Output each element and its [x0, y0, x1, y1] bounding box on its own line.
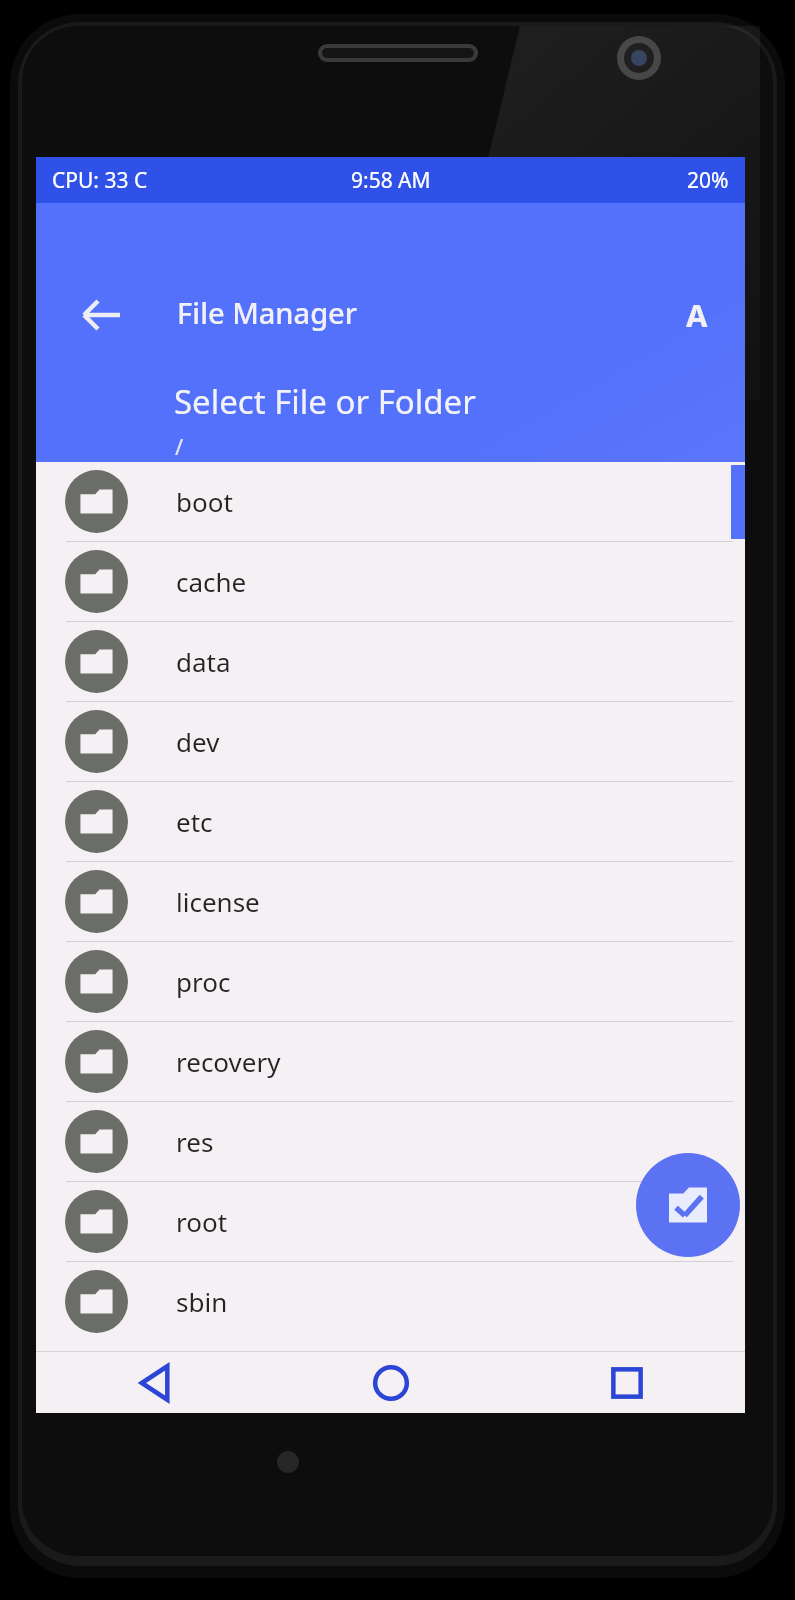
button[interactable]: root	[36, 1182, 745, 1261]
staticText: cache	[176, 564, 247, 599]
button[interactable]: sbin	[36, 1262, 745, 1341]
staticText: proc	[176, 964, 231, 999]
staticText: 9:58 AM	[351, 166, 431, 195]
staticText: recovery	[176, 1044, 281, 1079]
staticText: boot	[176, 484, 233, 519]
staticText: CPU: 33 C	[52, 166, 148, 195]
staticText: license	[176, 884, 260, 919]
button[interactable]: dev	[36, 702, 745, 781]
staticText: 20%	[687, 166, 729, 195]
button[interactable]: Back	[36, 1352, 273, 1413]
staticText: res	[176, 1124, 214, 1159]
staticText: Select File or Folder	[174, 379, 476, 424]
button[interactable]: license	[36, 862, 745, 941]
button[interactable]: cache	[36, 542, 745, 621]
staticText: sbin	[176, 1284, 228, 1319]
button[interactable]: Recents	[509, 1352, 745, 1413]
staticText: /	[175, 431, 184, 461]
staticText: data	[176, 644, 231, 679]
button[interactable]: Home	[273, 1352, 509, 1413]
button[interactable]: Back	[72, 285, 132, 345]
staticText: dev	[176, 724, 220, 759]
button[interactable]: boot	[36, 462, 745, 541]
button[interactable]: res	[36, 1102, 745, 1181]
button[interactable]: recovery	[36, 1022, 745, 1101]
button[interactable]: Select folder	[636, 1153, 740, 1257]
button[interactable]: proc	[36, 942, 745, 1021]
button[interactable]: data	[36, 622, 745, 701]
button[interactable]: Text size	[674, 285, 734, 345]
button[interactable]: etc	[36, 782, 745, 861]
staticText: root	[176, 1204, 228, 1239]
staticText: A	[686, 294, 708, 336]
staticText: File Manager	[177, 293, 358, 332]
staticText: etc	[176, 804, 213, 839]
